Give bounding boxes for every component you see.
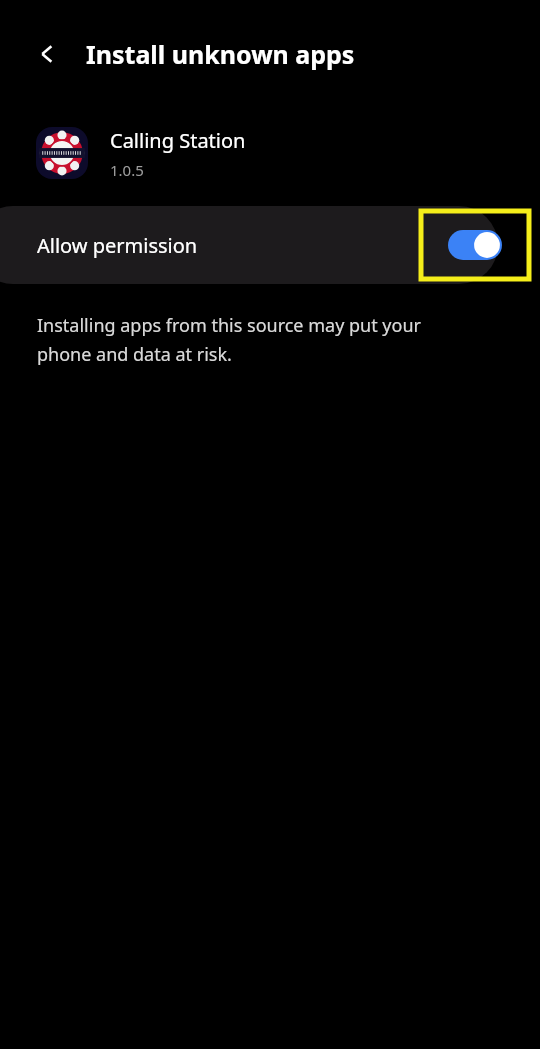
- staticText: Calling Station: [110, 127, 246, 154]
- button[interactable]: Allow permission toggle: [419, 209, 531, 281]
- button[interactable]: Allow permission: [0, 206, 498, 284]
- button[interactable]: Calling Station: [0, 108, 540, 198]
- staticText: 1.0.5: [110, 160, 144, 180]
- staticText: Allow permission: [37, 232, 198, 259]
- staticText: Install unknown apps: [86, 37, 355, 71]
- staticText: Installing apps from this source may put…: [37, 313, 421, 366]
- button[interactable]: Back: [26, 31, 72, 77]
